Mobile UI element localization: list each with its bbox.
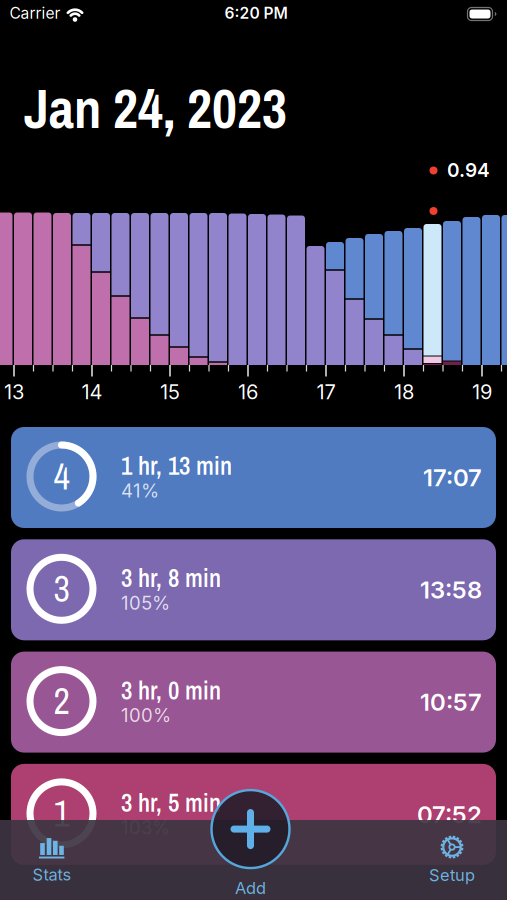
staticText: 15 (160, 380, 180, 404)
staticText: 105% (121, 592, 170, 614)
staticText: 103% (121, 816, 170, 839)
staticText: 3 hr, 0 min (121, 674, 221, 707)
staticText: 3 hr, 5 min (121, 786, 221, 819)
staticText: 0.94 (447, 158, 490, 182)
staticText: 13 (4, 380, 24, 404)
staticText: Add (235, 878, 266, 898)
staticText: 18 (394, 380, 414, 404)
staticText: 14 (81, 380, 102, 404)
staticText: 3 (53, 565, 69, 613)
staticText: 41% (121, 479, 159, 502)
button[interactable]: 1 (11, 764, 496, 865)
button[interactable]: 3 (11, 539, 496, 640)
staticText: Stats (32, 865, 71, 884)
button[interactable]: Setup (402, 831, 502, 889)
staticText: 07:52 (417, 800, 482, 829)
staticText: Jan 24, 2023 (24, 71, 287, 145)
button[interactable]: 2 (11, 652, 496, 753)
staticText: 17:07 (423, 463, 482, 492)
staticText: Setup (429, 865, 475, 885)
button[interactable]: Stats (2, 831, 102, 889)
staticText: 16 (238, 380, 258, 404)
staticText: 4 (53, 452, 69, 501)
staticText: 6:20 PM (224, 4, 287, 22)
button[interactable]: Add (195, 791, 305, 897)
staticText: 2 (53, 677, 69, 725)
staticText: 1 (53, 789, 69, 838)
staticText: 19 (472, 380, 492, 404)
staticText: 3 hr, 8 min (121, 561, 221, 595)
staticText: 1 hr, 13 min (121, 449, 232, 483)
staticText: 100% (121, 704, 171, 726)
staticText: 17 (316, 380, 335, 404)
staticText: 10:57 (420, 688, 482, 717)
staticText: Carrier (9, 4, 60, 22)
staticText: 13:58 (420, 575, 482, 604)
button[interactable]: 4 (11, 427, 496, 528)
